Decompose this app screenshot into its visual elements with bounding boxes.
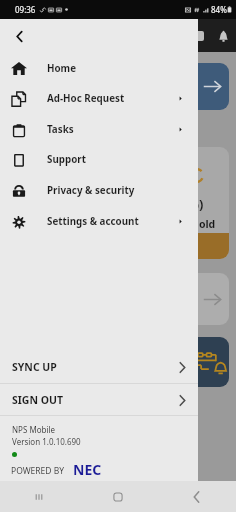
staticText: Home — [47, 62, 77, 75]
staticText: NEC — [73, 460, 102, 479]
button[interactable]: Workflow alerts — [150, 337, 229, 387]
button[interactable]: (88%) — [120, 147, 229, 259]
staticText: 09:36 — [15, 4, 36, 15]
button[interactable]: Privacy & security — [0, 175, 198, 206]
button[interactable]: Notifications — [212, 26, 234, 48]
staticText: NPS Mobile — [12, 424, 56, 435]
button[interactable]: Home — [78, 481, 157, 512]
staticText: (88%) — [168, 195, 204, 213]
staticText: Ad-Hoc Request — [47, 92, 125, 105]
staticText: On Hold — [173, 217, 216, 231]
button[interactable]: Tasks — [0, 114, 198, 145]
staticText: Version 1.0.10.690 — [12, 436, 81, 447]
button[interactable]: Open — [150, 63, 229, 110]
staticText: 84% — [211, 4, 227, 15]
button[interactable]: Back — [157, 481, 236, 512]
button[interactable]: Ad-Hoc Request — [0, 83, 198, 114]
staticText: Tasks — [47, 123, 74, 136]
staticText: SIGN OUT — [12, 393, 64, 407]
button[interactable]: SYNC UP — [0, 351, 198, 383]
button[interactable]: Close navigation drawer — [4, 21, 34, 51]
staticText: Settings & account — [47, 215, 139, 228]
button[interactable]: Account — [190, 31, 204, 41]
button[interactable]: Recent apps — [0, 481, 78, 512]
staticText: Support — [47, 153, 86, 166]
button[interactable]: Support — [0, 144, 198, 175]
staticText: SYNC UP — [12, 360, 57, 374]
button[interactable]: Home — [0, 53, 198, 84]
button[interactable]: SIGN OUT — [0, 384, 198, 416]
button[interactable]: Open — [150, 273, 229, 325]
staticText: Privacy & security — [47, 184, 135, 197]
staticText: POWERED BY — [11, 465, 65, 477]
button[interactable]: Settings & account — [0, 206, 198, 237]
